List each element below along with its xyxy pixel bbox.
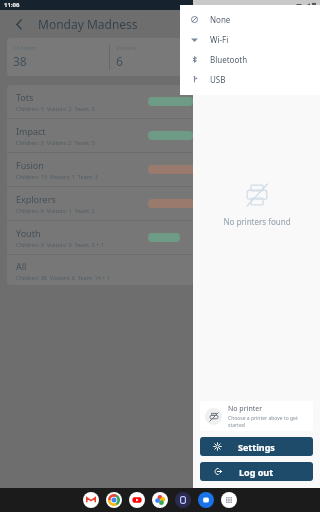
- staticText: 14%: [193, 60, 205, 68]
- staticText: Settings: [238, 441, 275, 453]
- staticText: Bluetooth: [210, 54, 248, 65]
- staticText: Children: 5 Visitors: 2 Team: 3: [16, 139, 95, 146]
- button[interactable]: App: [152, 492, 168, 508]
- staticText: Children: 9 Visitors: 0 Team: 3 + 1: [16, 241, 104, 248]
- button[interactable]: App: [129, 492, 145, 508]
- button[interactable]: App: [175, 492, 191, 508]
- button[interactable]: USB: [180, 69, 320, 89]
- staticText: Wi-Fi: [210, 34, 229, 45]
- button[interactable]: App: [198, 492, 214, 508]
- button[interactable]: Wi-Fi: [180, 29, 320, 49]
- button[interactable]: App: [83, 492, 99, 508]
- button[interactable]: App: [106, 492, 122, 508]
- staticText: Children: [13, 44, 37, 52]
- staticText: No printer: [228, 404, 263, 414]
- button[interactable]: Fusion: [7, 153, 313, 186]
- button[interactable]: Tots: [7, 85, 313, 118]
- staticText: Impact: [16, 125, 46, 137]
- button[interactable]: None: [180, 9, 320, 29]
- staticText: None: [210, 14, 231, 25]
- button[interactable]: Youth: [7, 221, 313, 254]
- button[interactable]: Log out: [200, 462, 313, 481]
- staticText: 38: [13, 53, 27, 69]
- staticText: Explorers: [16, 193, 56, 205]
- staticText: Children: 38 Visitors: 6 Team: 14 + 1: [16, 274, 111, 281]
- staticText: Children: 5 Visitors: 2 Team: 3: [16, 105, 95, 112]
- button[interactable]: App: [221, 492, 237, 508]
- staticText: 14: [218, 53, 232, 69]
- staticText: Log out: [239, 466, 274, 478]
- staticText: USB: [210, 74, 226, 85]
- button[interactable]: Bluetooth: [180, 49, 320, 69]
- staticText: Children: 13 Visitors: 1 Team: 3: [16, 173, 98, 180]
- staticText: All: [16, 260, 27, 272]
- staticText: Fusion: [16, 159, 44, 171]
- staticText: 11:06: [4, 1, 20, 9]
- staticText: 6: [116, 53, 123, 69]
- button[interactable]: Settings: [200, 437, 313, 456]
- button[interactable]: All: [7, 255, 313, 285]
- staticText: Monday Madness: [38, 16, 138, 32]
- button[interactable]: No printer: [200, 401, 313, 431]
- button[interactable]: Explorers: [7, 187, 313, 220]
- staticText: Tots: [16, 91, 34, 103]
- staticText: No printers found: [223, 216, 291, 227]
- staticText: Choose a printer above to get started: [228, 415, 308, 428]
- staticText: Visitors: [116, 44, 137, 52]
- staticText: Children: 6 Visitors: 1 Team: 2: [16, 207, 95, 214]
- button[interactable]: Impact: [7, 119, 313, 152]
- button[interactable]: Back: [10, 15, 28, 33]
- button[interactable]: Children: [7, 38, 313, 76]
- staticText: Youth: [16, 227, 41, 239]
